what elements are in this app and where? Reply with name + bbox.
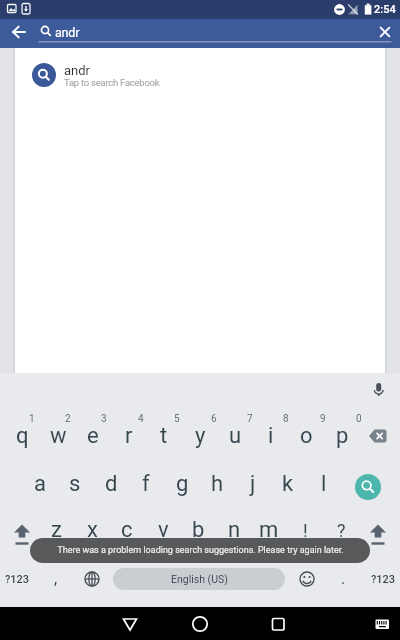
staticText: 4 xyxy=(138,413,144,425)
staticText: d xyxy=(105,471,118,497)
staticText: z xyxy=(51,517,62,543)
button[interactable]: f xyxy=(128,468,164,500)
button[interactable]: l xyxy=(306,468,342,500)
button[interactable]: . xyxy=(325,562,361,594)
staticText: k xyxy=(282,471,294,497)
staticText: 0 xyxy=(356,413,362,425)
button[interactable]: d xyxy=(93,468,129,500)
staticText: ?123 xyxy=(371,573,396,586)
button[interactable]: p xyxy=(324,420,360,452)
button[interactable] xyxy=(355,474,381,500)
button[interactable]: ! xyxy=(287,514,323,546)
button[interactable]: n xyxy=(216,514,252,546)
staticText: i xyxy=(268,423,274,449)
staticText: u xyxy=(229,423,242,449)
button[interactable]: c xyxy=(109,514,145,546)
button[interactable]: s xyxy=(57,468,93,500)
button[interactable] xyxy=(180,610,220,638)
button[interactable]: ?123 xyxy=(365,563,400,595)
staticText: ! xyxy=(303,520,308,541)
button[interactable]: r xyxy=(111,420,147,452)
button[interactable]: b xyxy=(180,514,216,546)
staticText: b xyxy=(192,517,205,543)
staticText: English (US) xyxy=(171,573,228,585)
staticText: c xyxy=(121,517,133,543)
staticText: t xyxy=(160,423,168,449)
staticText: x xyxy=(87,517,98,543)
staticText: 1 xyxy=(29,413,35,425)
staticText: andr xyxy=(64,63,90,78)
button[interactable]: q xyxy=(4,420,40,452)
staticText: o xyxy=(300,423,313,449)
button[interactable]: g xyxy=(164,468,200,500)
staticText: s xyxy=(69,471,81,497)
staticText: y xyxy=(195,423,206,449)
button[interactable]: x xyxy=(74,514,110,546)
staticText: f xyxy=(142,471,150,497)
button[interactable]: m xyxy=(251,514,287,546)
staticText: a xyxy=(34,471,46,497)
button[interactable]: andr xyxy=(15,48,385,102)
staticText: p xyxy=(336,423,349,449)
staticText: . xyxy=(341,569,346,588)
staticText: Tap to search Facebook xyxy=(64,77,160,88)
button[interactable]: i xyxy=(253,420,289,452)
button[interactable]: w xyxy=(40,420,76,452)
staticText: 2 xyxy=(65,413,71,425)
button[interactable] xyxy=(370,379,388,397)
button[interactable]: a xyxy=(22,468,58,500)
button[interactable]: e xyxy=(75,420,111,452)
button[interactable] xyxy=(258,610,298,638)
staticText: andr xyxy=(55,25,80,40)
button[interactable]: ?123 xyxy=(0,563,35,595)
staticText: 7 xyxy=(247,413,253,425)
button[interactable] xyxy=(297,569,317,589)
staticText: g xyxy=(176,471,189,497)
staticText: e xyxy=(87,423,99,449)
button[interactable] xyxy=(368,429,388,443)
button[interactable]: v xyxy=(145,514,181,546)
button[interactable]: j xyxy=(235,468,271,500)
button[interactable] xyxy=(10,518,34,548)
staticText: l xyxy=(321,471,327,497)
staticText: 8 xyxy=(283,413,289,425)
button[interactable]: u xyxy=(217,420,253,452)
button[interactable]: k xyxy=(270,468,306,500)
button[interactable] xyxy=(38,19,370,48)
button[interactable] xyxy=(82,569,102,589)
staticText: w xyxy=(50,423,67,449)
button[interactable] xyxy=(370,19,400,48)
button[interactable] xyxy=(4,19,34,48)
staticText: h xyxy=(211,471,224,497)
staticText: 5 xyxy=(174,413,180,425)
staticText: q xyxy=(16,423,29,449)
staticText: There was a problem loading search sugge… xyxy=(57,545,344,556)
staticText: 9 xyxy=(320,413,326,425)
staticText: r xyxy=(125,423,133,449)
staticText: ?123 xyxy=(5,573,30,586)
button[interactable]: ? xyxy=(323,514,359,546)
button[interactable] xyxy=(368,610,398,638)
button[interactable]: h xyxy=(199,468,235,500)
staticText: 6 xyxy=(211,413,217,425)
staticText: 2:54 xyxy=(374,3,396,16)
staticText: m xyxy=(259,517,279,543)
button[interactable]: English (US) xyxy=(113,568,285,590)
staticText: n xyxy=(228,517,241,543)
button[interactable]: z xyxy=(38,514,74,546)
button[interactable]: y xyxy=(182,420,218,452)
button[interactable]: , xyxy=(38,562,74,594)
staticText: 3 xyxy=(101,413,107,425)
button[interactable] xyxy=(110,610,150,638)
button[interactable]: o xyxy=(288,420,324,452)
staticText: v xyxy=(158,517,169,543)
staticText: j xyxy=(250,471,256,497)
button[interactable] xyxy=(366,518,390,548)
staticText: , xyxy=(54,569,58,588)
button[interactable]: t xyxy=(146,420,182,452)
staticText: ? xyxy=(337,520,346,541)
